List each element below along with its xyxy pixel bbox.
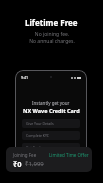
staticText: ₹1,999: [25, 160, 44, 168]
staticText: Joining Fee: [13, 152, 37, 158]
staticText: No joining fee. No annual charges.: [29, 31, 75, 45]
staticText: Lifetime Free: [25, 17, 78, 28]
button[interactable]: Complete KYC: [22, 131, 80, 140]
staticText: Give Your Details: [26, 121, 54, 126]
staticText: Limited Time Offer: [49, 152, 89, 158]
staticText: Complete KYC: [26, 133, 50, 138]
staticText: 9:41: [21, 75, 29, 80]
staticText: NX Wave Credit Card: [23, 107, 80, 114]
button[interactable]: Give Your Details: [22, 119, 80, 128]
staticText: ₹0: [13, 159, 22, 169]
button[interactable]: Joining Fee: [6, 147, 92, 172]
button[interactable]: Get Card: [22, 143, 80, 152]
staticText: Instantly get your: [32, 100, 70, 106]
staticText: Get Card: [26, 145, 41, 150]
